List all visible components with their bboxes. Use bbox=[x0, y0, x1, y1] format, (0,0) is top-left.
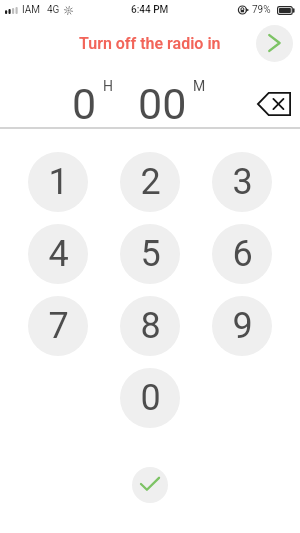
button[interactable]: 0 bbox=[120, 368, 180, 428]
button[interactable]: 6 bbox=[212, 224, 272, 284]
staticText: 1 bbox=[48, 161, 69, 203]
staticText: 4 bbox=[48, 233, 69, 275]
staticText: 7 bbox=[48, 305, 69, 347]
staticText: 00 bbox=[138, 79, 187, 129]
staticText: 6:44 PM bbox=[131, 4, 169, 16]
staticText: 0 bbox=[140, 377, 161, 419]
staticText: 6 bbox=[232, 233, 253, 275]
staticText: Turn off the radio in bbox=[79, 34, 221, 53]
staticText: H bbox=[103, 78, 113, 94]
button[interactable]: Next bbox=[256, 25, 293, 62]
button[interactable]: Confirm bbox=[132, 467, 168, 503]
staticText: IAM bbox=[22, 4, 41, 16]
button[interactable]: 9 bbox=[212, 296, 272, 356]
staticText: 2 bbox=[140, 161, 161, 203]
button[interactable]: 3 bbox=[212, 152, 272, 212]
button[interactable]: 1 bbox=[28, 152, 88, 212]
staticText: 4G bbox=[47, 4, 60, 16]
staticText: 8 bbox=[140, 305, 161, 347]
staticText: 5 bbox=[140, 233, 161, 275]
button[interactable]: 5 bbox=[120, 224, 180, 284]
staticText: 79% bbox=[252, 4, 271, 16]
button[interactable]: 7 bbox=[28, 296, 88, 356]
button[interactable]: 4 bbox=[28, 224, 88, 284]
staticText: 9 bbox=[232, 305, 253, 347]
button[interactable]: 2 bbox=[120, 152, 180, 212]
staticText: M bbox=[193, 78, 206, 94]
staticText: 3 bbox=[232, 161, 253, 203]
button[interactable]: Backspace bbox=[252, 84, 296, 124]
staticText: 0 bbox=[72, 79, 97, 129]
button[interactable]: 8 bbox=[120, 296, 180, 356]
